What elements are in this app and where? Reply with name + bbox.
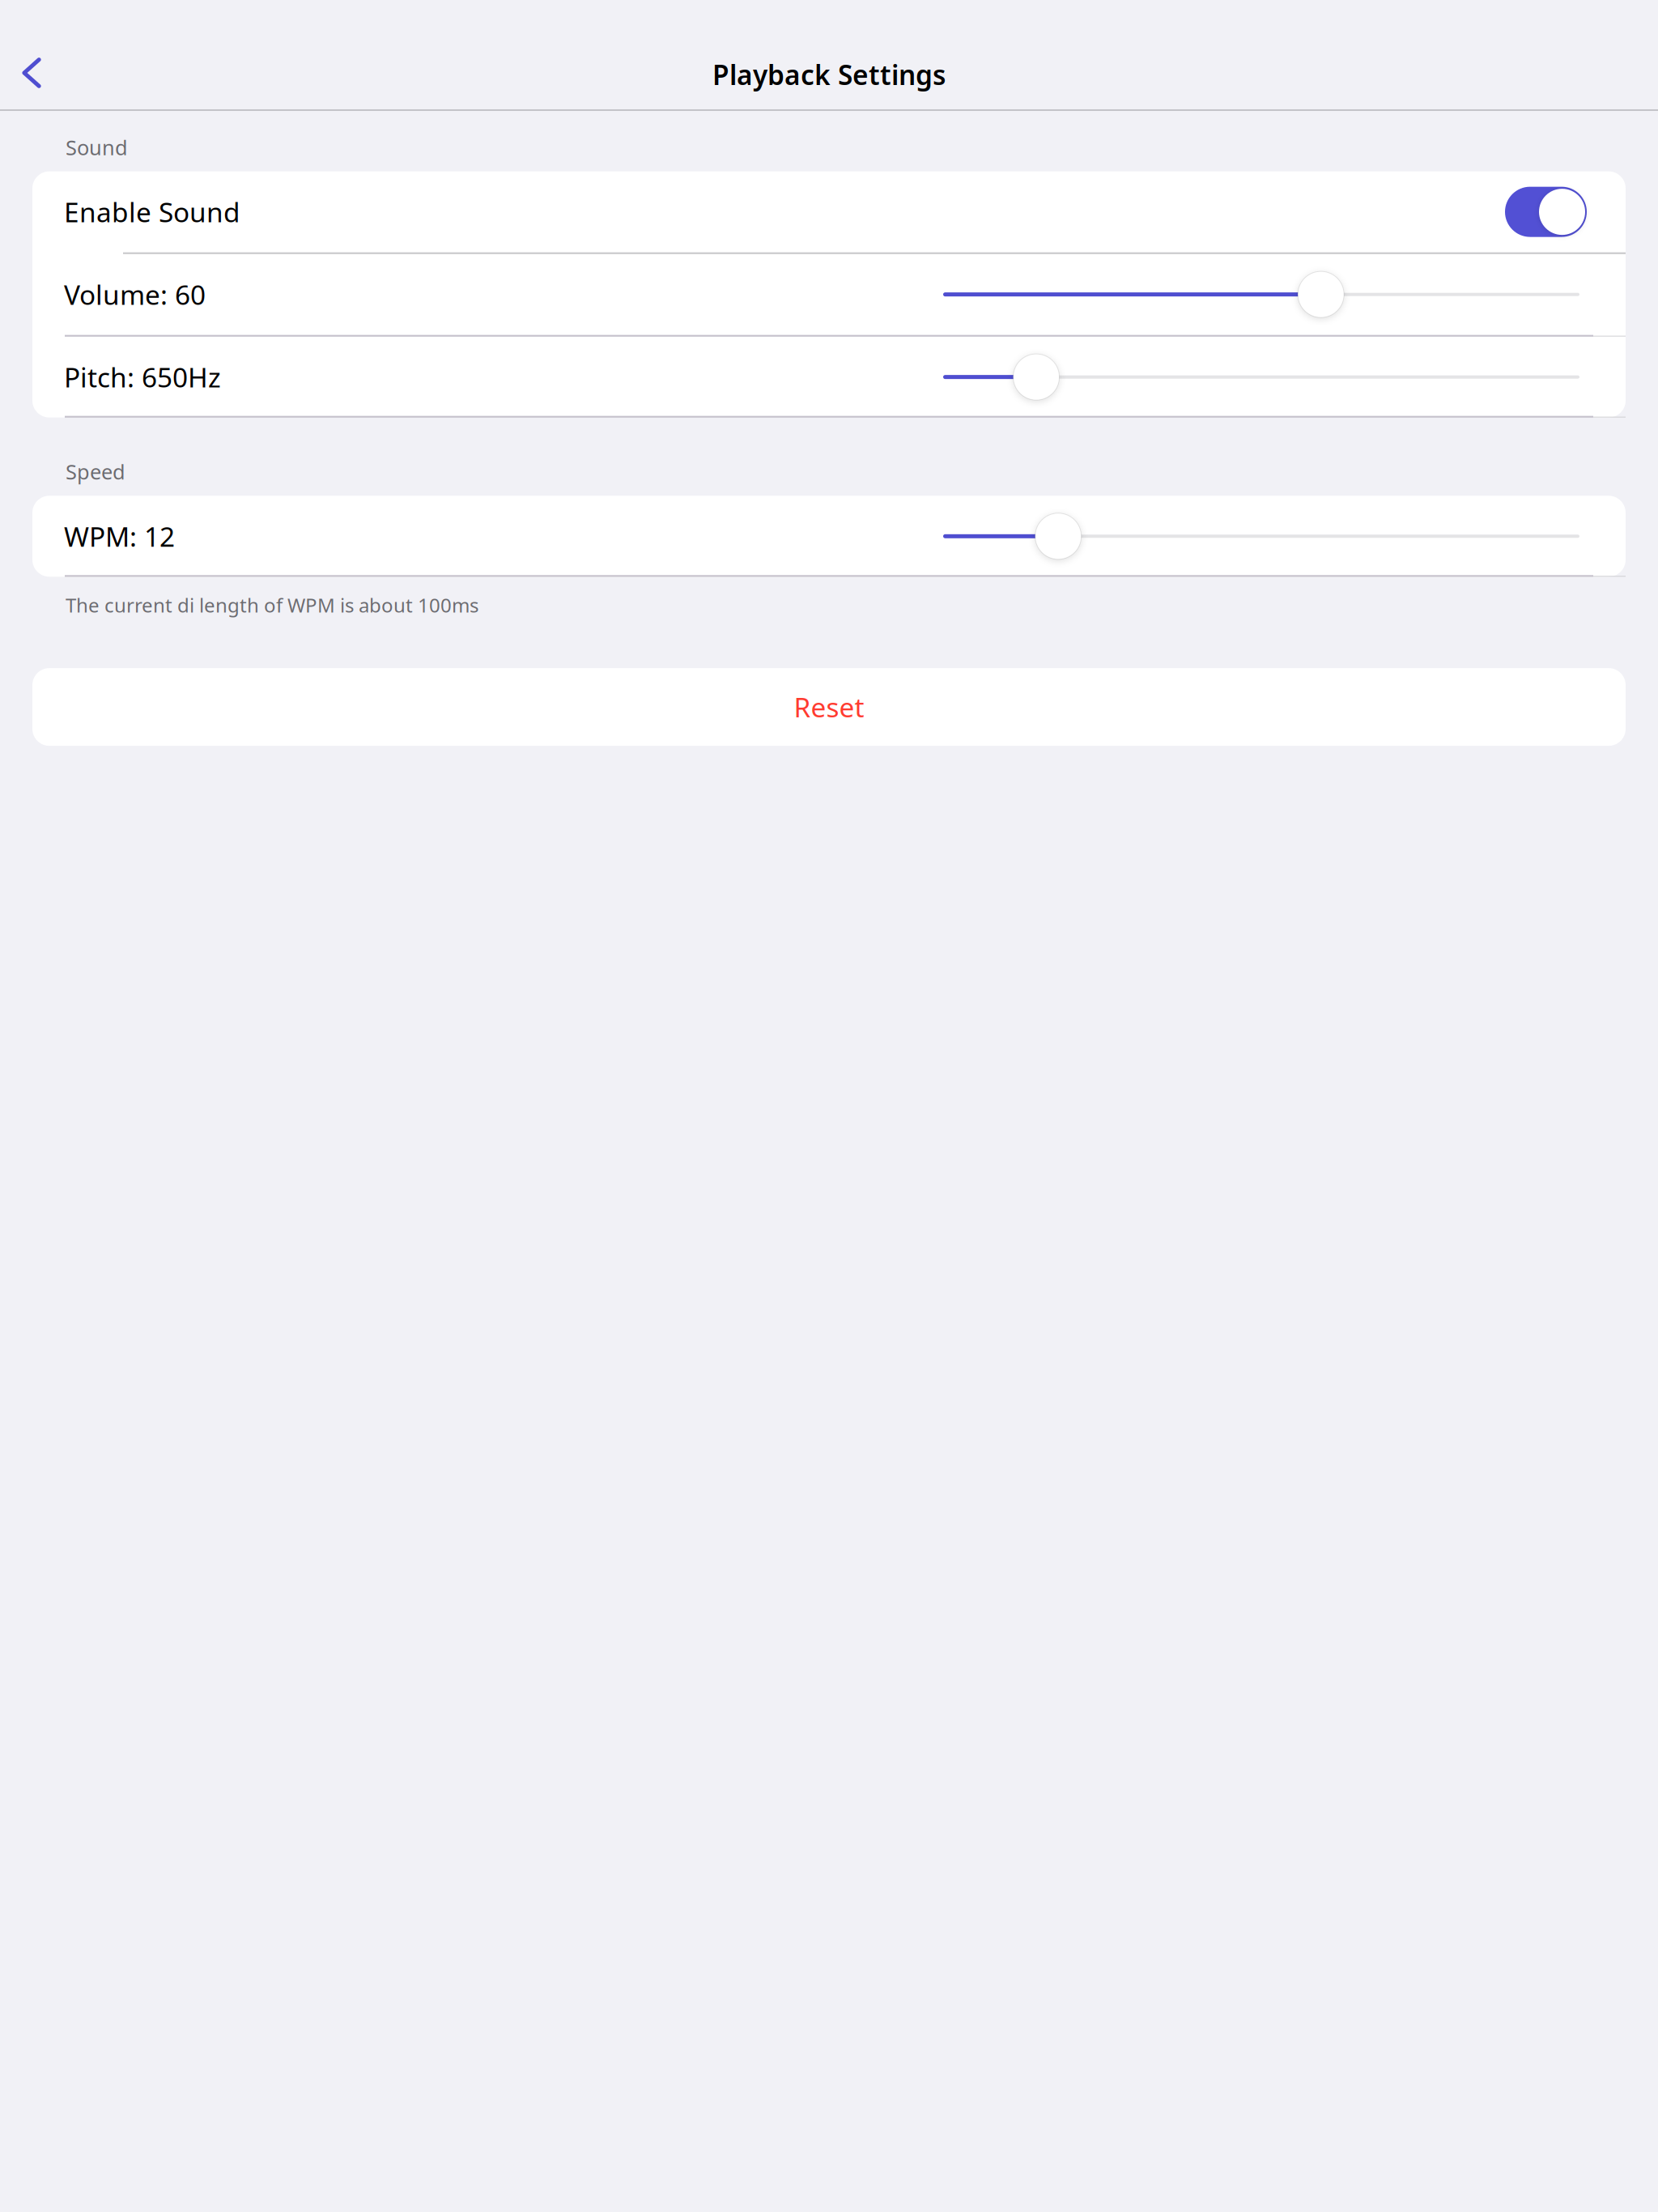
button[interactable]: Enable Sound [32, 171, 1626, 252]
staticText: Volume: 60 [64, 276, 206, 312]
button[interactable]: Volume: 60 [32, 254, 1626, 335]
staticText: The current di length of WPM is about 10… [66, 592, 478, 618]
button[interactable]: Pitch: 650Hz [32, 336, 1626, 417]
staticText: Speed [66, 458, 125, 485]
staticText: Playback Settings [712, 57, 946, 93]
staticText: Pitch: 650Hz [64, 359, 221, 395]
staticText: WPM: 12 [64, 518, 175, 554]
button[interactable]: Back [0, 0, 63, 109]
staticText: Sound [66, 134, 128, 161]
button[interactable]: Reset [32, 668, 1626, 746]
staticText: Enable Sound [64, 194, 240, 230]
staticText: Reset [794, 689, 864, 725]
button[interactable]: WPM: 12 [32, 496, 1626, 577]
